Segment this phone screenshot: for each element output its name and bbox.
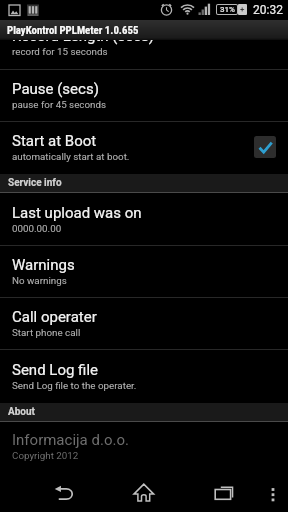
button[interactable]: Recent apps xyxy=(205,474,243,512)
staticText: Send Log file xyxy=(12,361,99,379)
staticText: Start phone call xyxy=(12,327,81,338)
button[interactable]: Call operater xyxy=(0,298,288,350)
staticText: Call operater xyxy=(12,308,97,326)
button[interactable]: More options xyxy=(254,474,288,512)
button[interactable]: Informacija d.o.o. xyxy=(0,422,288,472)
staticText: PlayKontrol PPLMeter 1.0.655 xyxy=(7,24,139,37)
staticText: Informacija d.o.o. xyxy=(12,431,129,449)
staticText: 20:32 xyxy=(253,3,283,17)
staticText: automatically start at boot. xyxy=(12,151,130,162)
staticText: pause for 45 seconds xyxy=(12,99,107,110)
button[interactable]: Pause (secs) xyxy=(0,70,288,122)
button[interactable]: Send Log file xyxy=(0,350,288,403)
button[interactable]: Record Length (secs) xyxy=(0,18,288,70)
staticText: Record Length (secs) xyxy=(12,27,155,45)
staticText: Copyright 2012 xyxy=(12,450,79,461)
staticText: Service info xyxy=(8,177,62,189)
staticText: Send Log file to the operater. xyxy=(12,380,137,391)
staticText: 0000.00.00 xyxy=(12,223,62,234)
staticText: Pause (secs) xyxy=(12,80,99,98)
staticText: + xyxy=(240,5,245,14)
button[interactable]: Last upload was on xyxy=(0,193,288,246)
staticText: Warnings xyxy=(12,256,75,274)
staticText: record for 15 seconds xyxy=(12,46,108,57)
button[interactable]: Start at Boot checkbox xyxy=(254,136,276,158)
button[interactable]: Home xyxy=(125,474,163,512)
button[interactable]: Warnings xyxy=(0,246,288,298)
button[interactable]: Start at Boot xyxy=(0,122,288,174)
staticText: About xyxy=(8,406,35,418)
staticText: No warnings xyxy=(12,275,67,286)
staticText: Last upload was on xyxy=(12,204,142,222)
button[interactable]: Back xyxy=(45,474,83,512)
staticText: Start at Boot xyxy=(12,132,97,150)
staticText: 31% xyxy=(220,5,235,14)
